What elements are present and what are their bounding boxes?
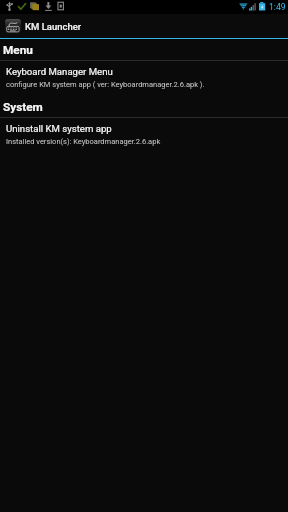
staticText: 1:49 — [269, 2, 286, 12]
button[interactable]: KM Launcher icon — [0, 14, 288, 38]
staticText: Uninstall KM system app — [6, 123, 112, 134]
button[interactable]: Uninstall KM system app — [0, 118, 288, 153]
other: KM Launcher icon — [5, 19, 21, 34]
button[interactable]: Keyboard Manager Menu — [0, 61, 288, 96]
staticText: System — [3, 100, 43, 114]
staticText: KM Launcher — [25, 21, 82, 32]
staticText: Installed version(s): Keyboardmanager.2.… — [6, 137, 161, 146]
staticText: Menu — [3, 43, 33, 57]
staticText: Keyboard Manager Menu — [6, 66, 113, 77]
staticText: configure KM system app ( ver: Keyboardm… — [6, 80, 205, 89]
